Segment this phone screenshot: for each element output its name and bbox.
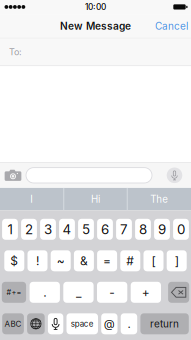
- staticText: 1: [7, 221, 12, 237]
- button[interactable]: Camera: [0, 164, 26, 186]
- staticText: I: [30, 193, 33, 205]
- button[interactable]: -: [97, 282, 127, 303]
- button[interactable]: space: [66, 313, 98, 334]
- button[interactable]: _: [63, 282, 94, 303]
- button[interactable]: 8: [135, 219, 151, 240]
- staticText: ]: [175, 253, 179, 268]
- button[interactable]: 1: [2, 219, 18, 240]
- button[interactable]: 9: [154, 219, 170, 240]
- staticText: New Message: [60, 20, 131, 32]
- staticText: The: [150, 193, 168, 205]
- button[interactable]: Dictate: [163, 164, 185, 186]
- button[interactable]: return: [140, 313, 189, 334]
- staticText: Hi: [91, 193, 100, 205]
- staticText: &: [80, 253, 88, 268]
- button[interactable]: ]: [167, 250, 187, 271]
- button[interactable]: =: [97, 250, 117, 271]
- staticText: ~: [57, 253, 65, 268]
- button[interactable]: Cancel: [148, 15, 191, 37]
- staticText: .: [127, 317, 130, 331]
- button[interactable]: Dictation: [48, 313, 63, 334]
- button[interactable]: ~: [51, 250, 71, 271]
- button[interactable]: To:: [0, 38, 191, 66]
- button[interactable]: 6: [97, 219, 113, 240]
- staticText: $: [10, 253, 18, 268]
- staticText: 3: [44, 221, 52, 237]
- button[interactable]: .: [121, 313, 137, 334]
- button[interactable]: 5: [78, 219, 94, 240]
- staticText: 2: [25, 221, 33, 237]
- staticText: @: [104, 317, 115, 331]
- button[interactable]: +: [131, 282, 161, 303]
- button[interactable]: ABC: [2, 313, 24, 334]
- staticText: 6: [101, 221, 109, 237]
- staticText: =: [103, 253, 111, 268]
- button[interactable]: [168, 282, 189, 303]
- button[interactable]: 7: [116, 219, 132, 240]
- button[interactable]: @: [101, 313, 117, 334]
- button[interactable]: [: [143, 250, 163, 271]
- button[interactable]: .: [30, 282, 60, 303]
- button[interactable]: 0: [173, 219, 189, 240]
- staticText: To:: [9, 47, 22, 58]
- button[interactable]: !: [27, 250, 47, 271]
- staticText: -: [109, 285, 115, 299]
- staticText: return: [150, 318, 179, 330]
- staticText: 4: [62, 221, 71, 237]
- button[interactable]: 2: [21, 219, 37, 240]
- button[interactable]: &: [74, 250, 94, 271]
- staticText: [: [151, 253, 155, 268]
- button[interactable]: #+=: [2, 282, 26, 303]
- button[interactable]: The: [128, 188, 191, 210]
- button[interactable]: 4: [59, 219, 75, 240]
- staticText: 8: [139, 221, 147, 237]
- staticText: 9: [158, 221, 166, 237]
- staticText: !: [36, 253, 39, 268]
- staticText: 0: [177, 221, 185, 237]
- staticText: _: [76, 285, 81, 299]
- button[interactable]: 3: [40, 219, 56, 240]
- staticText: .: [43, 285, 46, 299]
- staticText: 7: [120, 221, 128, 237]
- staticText: #: [126, 253, 134, 268]
- button[interactable]: [27, 313, 45, 334]
- staticText: 5: [82, 221, 90, 237]
- staticText: +: [142, 285, 150, 299]
- staticText: #+=: [6, 288, 21, 297]
- staticText: Cancel: [155, 20, 188, 32]
- staticText: 10:00: [85, 2, 106, 12]
- button[interactable]: #: [120, 250, 140, 271]
- button[interactable]: $: [4, 250, 24, 271]
- staticText: space: [71, 319, 94, 329]
- staticText: ABC: [5, 319, 22, 329]
- button[interactable]: Hi: [64, 188, 127, 210]
- button[interactable]: I: [0, 188, 63, 210]
